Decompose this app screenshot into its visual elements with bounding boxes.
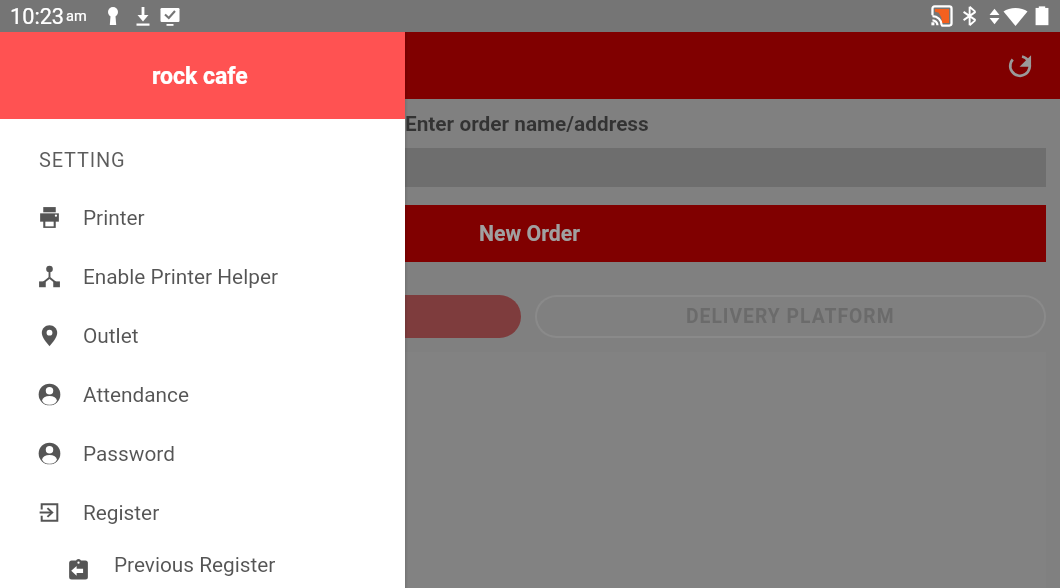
- staticText: Enter order name/address: [405, 112, 649, 136]
- staticText: Password: [83, 442, 175, 466]
- button[interactable]: DELIVERY PLATFORM: [537, 297, 1044, 336]
- staticText: Register: [83, 501, 160, 525]
- button[interactable]: Refresh: [1000, 46, 1040, 86]
- staticText: New Order: [479, 221, 581, 246]
- staticText: am: [66, 8, 87, 25]
- staticText: Previous Register: [114, 553, 276, 577]
- staticText: Enable Printer Helper: [83, 265, 278, 289]
- staticText: 10:23: [10, 4, 65, 29]
- button[interactable]: Enable Printer Helper: [0, 247, 405, 306]
- staticText: rock cafe: [152, 63, 248, 90]
- button[interactable]: Previous Register: [0, 542, 405, 588]
- button[interactable]: New Order: [14, 205, 1046, 262]
- button[interactable]: TAKE AWAY: [14, 295, 521, 338]
- staticText: Attendance: [83, 383, 189, 407]
- button[interactable]: Outlet: [0, 306, 405, 365]
- staticText: Printer: [83, 206, 145, 230]
- staticText: DELIVERY PLATFORM: [686, 305, 895, 328]
- button[interactable]: Register: [0, 483, 405, 542]
- button[interactable]: Password: [0, 424, 405, 483]
- button[interactable]: Printer: [0, 188, 405, 247]
- staticText: SETTING: [39, 148, 126, 171]
- staticText: Outlet: [83, 324, 139, 348]
- button[interactable]: Attendance: [0, 365, 405, 424]
